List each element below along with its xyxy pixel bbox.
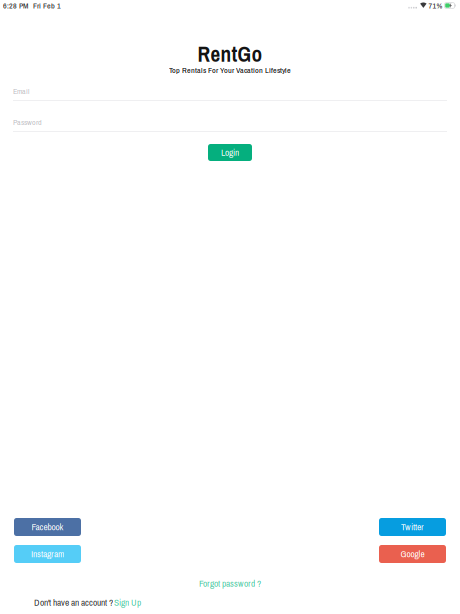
staticText: Instagram [31,548,64,560]
staticText: RentGo [197,40,262,68]
staticText: 71% [429,0,443,11]
staticText: Google [400,548,424,560]
button[interactable]: Google [379,545,446,563]
button[interactable]: Forgot password ? [199,579,261,588]
staticText: 6:28 PM [3,0,28,11]
staticText: Don't have an account ? [34,596,113,609]
button[interactable]: Sign Up [114,596,141,609]
staticText: Email [13,86,29,96]
staticText: Sign Up [114,596,141,609]
staticText: Fri Feb 1 [33,0,61,11]
staticText: Top Rentals For Your Vacation Lifestyle [169,65,291,75]
button[interactable]: Login [208,144,252,161]
button[interactable]: Facebook [14,518,81,536]
staticText: Login [221,146,239,159]
button[interactable]: Password [13,118,447,132]
staticText: Forgot password ? [199,577,261,590]
staticText: Twitter [401,521,424,533]
button[interactable]: Instagram [14,545,81,563]
button[interactable]: Email [13,87,447,101]
staticText: Facebook [31,521,63,533]
button[interactable]: Twitter [379,518,446,536]
staticText: Password [13,117,42,127]
